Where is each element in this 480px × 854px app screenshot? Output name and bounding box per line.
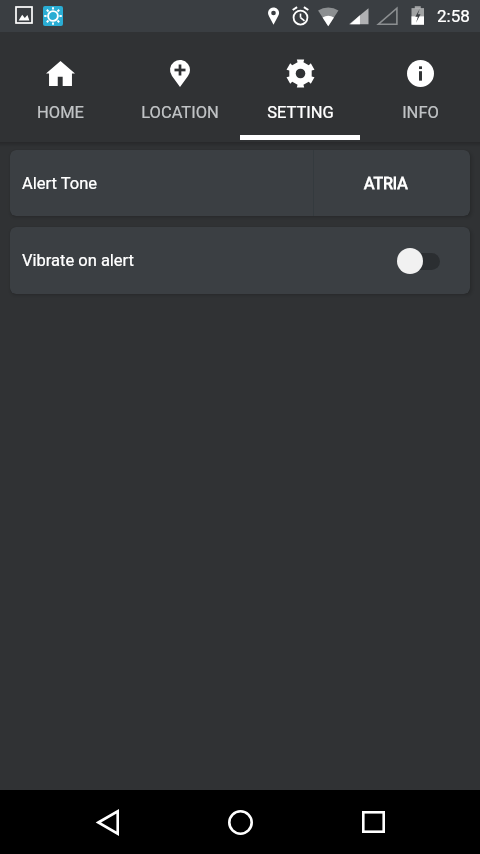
button[interactable]: LOCATION <box>120 32 240 142</box>
staticText: Vibrate on alert <box>22 251 397 270</box>
other: Vibrate on alert toggle <box>397 247 441 275</box>
button[interactable]: ATRIA <box>314 150 470 216</box>
button[interactable]: HOME <box>0 32 120 142</box>
staticText: SETTING <box>267 103 334 122</box>
staticText: INFO <box>402 103 439 122</box>
button[interactable]: INFO <box>360 32 480 142</box>
staticText: LOCATION <box>141 103 219 122</box>
staticText: ATRIA <box>364 174 408 193</box>
button[interactable]: Vibrate on alert <box>10 227 470 294</box>
button[interactable]: SETTING <box>240 32 360 142</box>
staticText: 2:58 <box>437 6 470 26</box>
button[interactable]: Alert Tone <box>10 150 313 216</box>
button[interactable]: Home <box>216 790 264 854</box>
staticText: Alert Tone <box>22 174 98 193</box>
staticText: HOME <box>37 103 84 122</box>
button[interactable]: Recent apps <box>349 790 397 854</box>
button[interactable]: Back <box>84 790 132 854</box>
